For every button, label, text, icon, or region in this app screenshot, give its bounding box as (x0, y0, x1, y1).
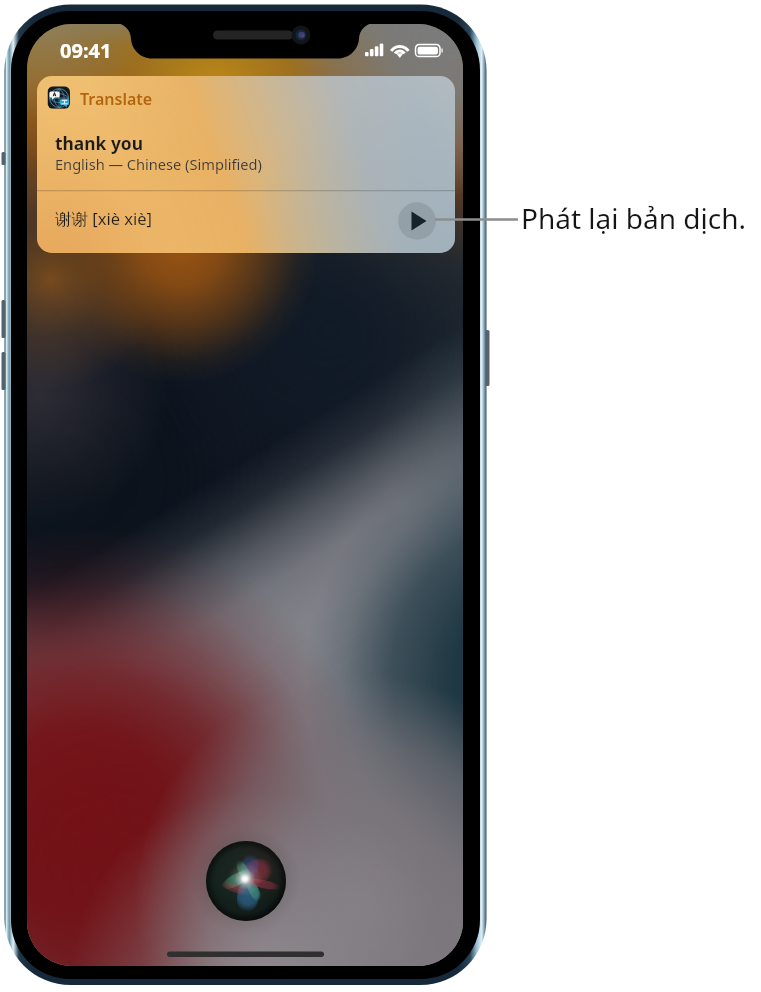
staticText: English — Chinese (Simplified) (55, 154, 262, 174)
staticText: 谢谢 [xiè xiè] (55, 207, 153, 230)
staticText: Phát lại bản dịch. (521, 199, 746, 237)
staticText: 09:41 (60, 37, 112, 64)
staticText: thank you (55, 131, 143, 155)
staticText: Translate (80, 88, 153, 110)
